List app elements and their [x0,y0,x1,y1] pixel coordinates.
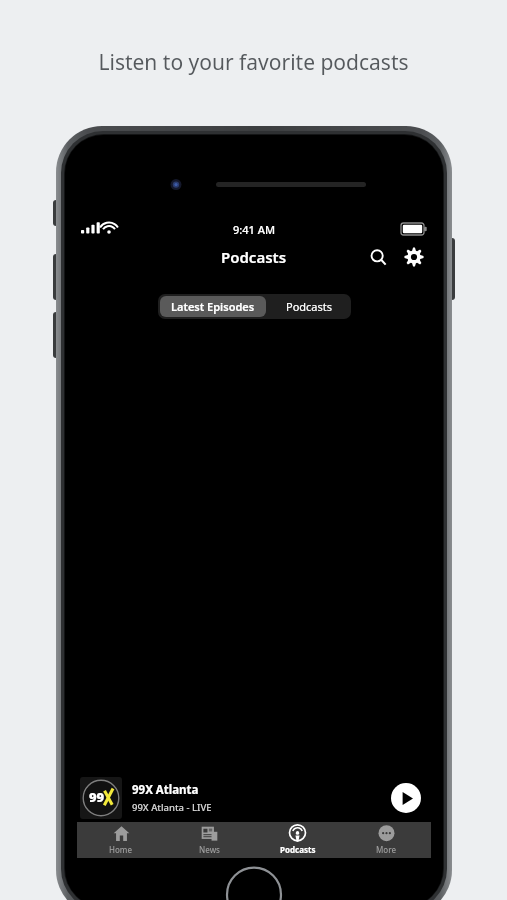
button[interactable]: News [165,822,253,858]
button[interactable]: Search [363,242,393,272]
staticText: News [199,844,220,855]
staticText: Podcasts [286,299,333,314]
button[interactable]: More [342,822,431,858]
staticText: 99 [89,788,105,806]
staticText: Latest Episodes [171,299,255,314]
button[interactable]: 99 [77,774,431,822]
button[interactable]: Podcasts [268,294,351,319]
button[interactable]: Latest Episodes [160,296,266,317]
button[interactable]: Settings [399,242,429,272]
button[interactable]: Play [391,783,421,813]
staticText: 9:41 AM [233,222,276,237]
staticText: 99X Atlanta - LIVE [132,801,212,814]
staticText: 99X Atlanta [132,782,199,798]
button[interactable]: Podcasts [253,822,342,858]
staticText: Listen to your favorite podcasts [98,48,409,77]
staticText: More [376,844,397,855]
staticText: Podcasts [221,247,287,267]
button[interactable]: Home [77,822,165,858]
staticText: Podcasts [280,844,316,855]
staticText: Home [109,844,133,855]
